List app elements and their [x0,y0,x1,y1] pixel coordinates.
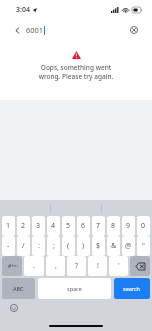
staticText: ? [75,261,79,271]
button[interactable]: 9 [122,216,135,236]
button[interactable]: 8 [107,216,120,236]
staticText: ABC [13,285,24,292]
button[interactable]: , [46,256,65,276]
staticText: ; [53,241,55,251]
button[interactable]: 0 [137,216,150,236]
staticText: Oops, something went wrong. Please try a… [18,63,134,81]
button[interactable]: 6 [77,216,90,236]
button[interactable]: ' [109,256,128,276]
staticText: : [38,241,40,251]
button[interactable]: ) [77,236,90,256]
staticText: #+= [8,263,17,270]
button[interactable]: 4 [47,216,60,236]
staticText: 9 [126,221,131,231]
button[interactable]: 3 [32,216,45,236]
staticText: 0 [141,221,146,231]
staticText: & [111,241,117,251]
staticText: @ [125,241,132,251]
staticText: ) [82,241,85,251]
button[interactable]: ? [67,256,86,276]
button[interactable]: ; [47,236,60,256]
button[interactable]: @ [122,236,135,256]
button[interactable]: / [17,236,30,256]
staticText: 5 [66,221,71,231]
button[interactable]: : [32,236,45,256]
button[interactable]: #+= [2,256,22,276]
button[interactable]: Back [6,20,146,40]
button[interactable]: 7 [92,216,105,236]
button[interactable]: ABC [2,278,35,299]
button[interactable]: ! [88,256,107,276]
staticText: " [142,241,145,251]
staticText: / [22,241,25,251]
button[interactable]: 1 [2,216,15,236]
staticText: 1 [6,221,11,231]
button[interactable]: . [24,256,44,276]
button[interactable]: 5 [62,216,75,236]
button[interactable]: search [114,278,150,299]
button[interactable]: ( [62,236,75,256]
staticText: 7 [96,221,101,231]
staticText: search [123,285,141,292]
button[interactable]: - [2,236,15,256]
staticText: 3 [36,221,41,231]
button[interactable]: $ [92,236,105,256]
staticText: 6 [81,221,86,231]
button[interactable]: Backspace [130,256,150,276]
button[interactable]: " [137,236,150,256]
staticText: ( [67,241,70,251]
staticText: ' [118,261,120,271]
button[interactable]: 2 [17,216,30,236]
staticText: ! [97,261,99,271]
staticText: 6001 [26,25,44,35]
staticText: 2 [21,221,26,231]
button[interactable]: Emoji [8,302,19,313]
button[interactable]: space [38,278,111,299]
staticText: - [7,241,10,251]
staticText: $ [96,241,101,251]
button[interactable]: Clear text [128,24,140,36]
button[interactable]: Back [12,25,22,35]
staticText: 8 [111,221,116,231]
button[interactable]: & [107,236,120,256]
staticText: 3:04 [16,5,30,15]
staticText: , [55,261,57,271]
staticText: . [33,261,35,271]
staticText: space [67,285,82,292]
staticText: 4 [51,221,56,231]
